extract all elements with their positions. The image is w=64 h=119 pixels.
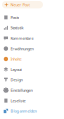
button[interactable]: Kommentare	[0, 33, 64, 43]
staticText: Leseliste	[10, 98, 25, 103]
staticText: Statistik	[10, 25, 23, 30]
button[interactable]: Einstellungen	[0, 85, 64, 95]
staticText: Erwähnungen	[10, 46, 33, 51]
button[interactable]: Inhalte	[0, 54, 64, 64]
button[interactable]: Erwähnungen	[0, 43, 64, 54]
staticText: Einstellungen	[10, 87, 32, 93]
staticText: Layout	[10, 67, 21, 72]
staticText: Design	[10, 77, 22, 82]
button[interactable]: Design	[0, 75, 64, 85]
staticText: Kommentare	[10, 35, 33, 41]
button[interactable]: Neuer Post	[2, 1, 43, 8]
button[interactable]: Posts	[0, 12, 64, 23]
button[interactable]: Leseliste	[0, 95, 64, 106]
button[interactable]: Blog anmelden	[0, 106, 64, 116]
staticText: Neuer Post	[10, 2, 29, 7]
button[interactable]: Statistik	[0, 23, 64, 33]
button[interactable]: Layout	[0, 64, 64, 75]
staticText: Inhalte	[10, 56, 21, 62]
staticText: Blog anmelden	[10, 108, 36, 114]
staticText: Posts	[10, 15, 19, 20]
